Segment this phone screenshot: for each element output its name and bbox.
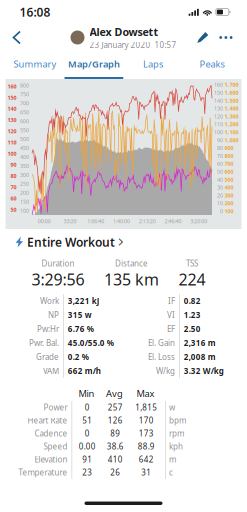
button[interactable]: Edit xyxy=(191,23,214,51)
staticText: Power xyxy=(43,402,67,413)
staticText: kph xyxy=(169,441,183,452)
staticText: Cadence xyxy=(34,428,67,439)
staticText: 662 m/h xyxy=(68,366,101,376)
staticText: 100 xyxy=(214,129,223,136)
staticText: 3,221 kJ xyxy=(68,296,100,306)
staticText: 600 xyxy=(224,168,233,175)
staticText: 60 xyxy=(217,160,223,167)
staticText: Alex Dowsett xyxy=(89,25,158,39)
staticText: Elevation xyxy=(34,454,67,465)
staticText: Avg xyxy=(106,387,123,400)
button[interactable]: Summary xyxy=(5,51,64,79)
button[interactable]: Map/Graph xyxy=(64,51,123,79)
staticText: 50 xyxy=(217,168,223,175)
staticText: 90 xyxy=(217,137,223,144)
staticText: 400 xyxy=(20,153,29,160)
button[interactable]: More xyxy=(214,23,241,51)
staticText: 2.50 xyxy=(184,324,201,334)
staticText: Duration xyxy=(41,258,74,269)
staticText: 900 xyxy=(224,144,233,152)
staticText: 10:57 xyxy=(154,39,176,50)
staticText: 1,300 xyxy=(224,113,238,120)
staticText: Distance xyxy=(115,258,148,269)
staticText: VI xyxy=(167,310,175,320)
button[interactable]: Back xyxy=(5,23,28,51)
staticText: c xyxy=(169,467,173,478)
staticText: 88.9 xyxy=(138,441,155,452)
staticText: 50 xyxy=(10,206,16,213)
staticText: 1,700 xyxy=(224,81,238,88)
staticText: 450 xyxy=(20,144,29,152)
staticText: 700 xyxy=(20,100,29,107)
staticText: 0.00 xyxy=(79,441,96,452)
staticText: Pw:Hr xyxy=(37,324,59,334)
staticText: 0 xyxy=(220,208,223,215)
staticText: 130 xyxy=(214,105,223,112)
staticText: 70 xyxy=(217,152,223,159)
staticText: 100 xyxy=(20,207,29,214)
staticText: 750 xyxy=(20,91,29,98)
staticText: Map/Graph xyxy=(68,58,120,70)
staticText: 800 xyxy=(224,152,233,159)
staticText: 257 xyxy=(108,402,123,413)
staticText: 31 xyxy=(141,467,151,478)
staticText: Pwr. Bal. xyxy=(29,338,59,348)
staticText: 91 xyxy=(82,454,92,465)
staticText: 400 xyxy=(224,184,233,191)
staticText: 2:13:20 xyxy=(139,218,156,225)
staticText: 1,600 xyxy=(224,89,238,96)
staticText: 10 xyxy=(217,200,223,207)
staticText: w xyxy=(169,402,175,413)
staticText: 150 xyxy=(7,94,16,101)
staticText: Entire Workout xyxy=(27,234,115,250)
staticText: TSS xyxy=(186,258,198,269)
staticText: Min xyxy=(78,387,94,400)
staticText: 3:20:00 xyxy=(190,218,207,225)
staticText: 45.0/55.0 % xyxy=(68,338,114,348)
staticText: 0.82 xyxy=(184,296,201,306)
staticText: Heart Rate xyxy=(27,415,67,426)
staticText: 173 xyxy=(139,428,154,439)
staticText: EF xyxy=(167,324,175,334)
staticText: 1,000 xyxy=(224,137,238,144)
staticText: 6.76 % xyxy=(68,324,94,334)
staticText: 0.2 % xyxy=(68,352,89,362)
staticText: Laps xyxy=(143,58,163,70)
staticText: 40 xyxy=(217,176,223,183)
staticText: 100 xyxy=(7,150,16,157)
staticText: 0 xyxy=(85,402,90,413)
staticText: 500 xyxy=(20,135,29,143)
staticText: 20 xyxy=(217,192,223,199)
staticText: rpm xyxy=(169,428,184,439)
staticText: 150 xyxy=(20,198,29,205)
staticText: 130 xyxy=(7,116,16,124)
staticText: m xyxy=(169,454,176,465)
staticText: 126 xyxy=(108,415,123,426)
button[interactable]: Laps xyxy=(123,51,182,79)
staticText: IF xyxy=(168,296,175,306)
staticText: 300 xyxy=(224,192,233,199)
staticText: 170 xyxy=(139,415,154,426)
staticText: 140 xyxy=(214,97,223,104)
staticText: 80 xyxy=(10,172,16,180)
staticText: 550 xyxy=(20,127,29,134)
staticText: 2:46:40 xyxy=(164,218,181,225)
staticText: Temperature xyxy=(18,467,67,478)
staticText: 315 w xyxy=(68,310,92,320)
staticText: 200 xyxy=(224,200,233,207)
button[interactable]: Peaks xyxy=(182,51,241,79)
button[interactable]: Entire Workout xyxy=(5,229,241,255)
staticText: 160 xyxy=(214,81,223,88)
staticText: NP xyxy=(48,310,59,320)
staticText: 350 xyxy=(20,162,29,169)
staticText: 500 xyxy=(224,176,233,183)
staticText: 90 xyxy=(10,161,16,168)
staticText: bpm xyxy=(169,415,186,426)
staticText: 110 xyxy=(7,139,16,146)
staticText: 38.6 xyxy=(107,441,124,452)
staticText: 30 xyxy=(217,184,223,191)
staticText: 1,100 xyxy=(224,129,238,136)
staticText: 224 xyxy=(178,269,205,290)
staticText: 0 xyxy=(85,428,90,439)
staticText: 33:20 xyxy=(64,218,77,225)
